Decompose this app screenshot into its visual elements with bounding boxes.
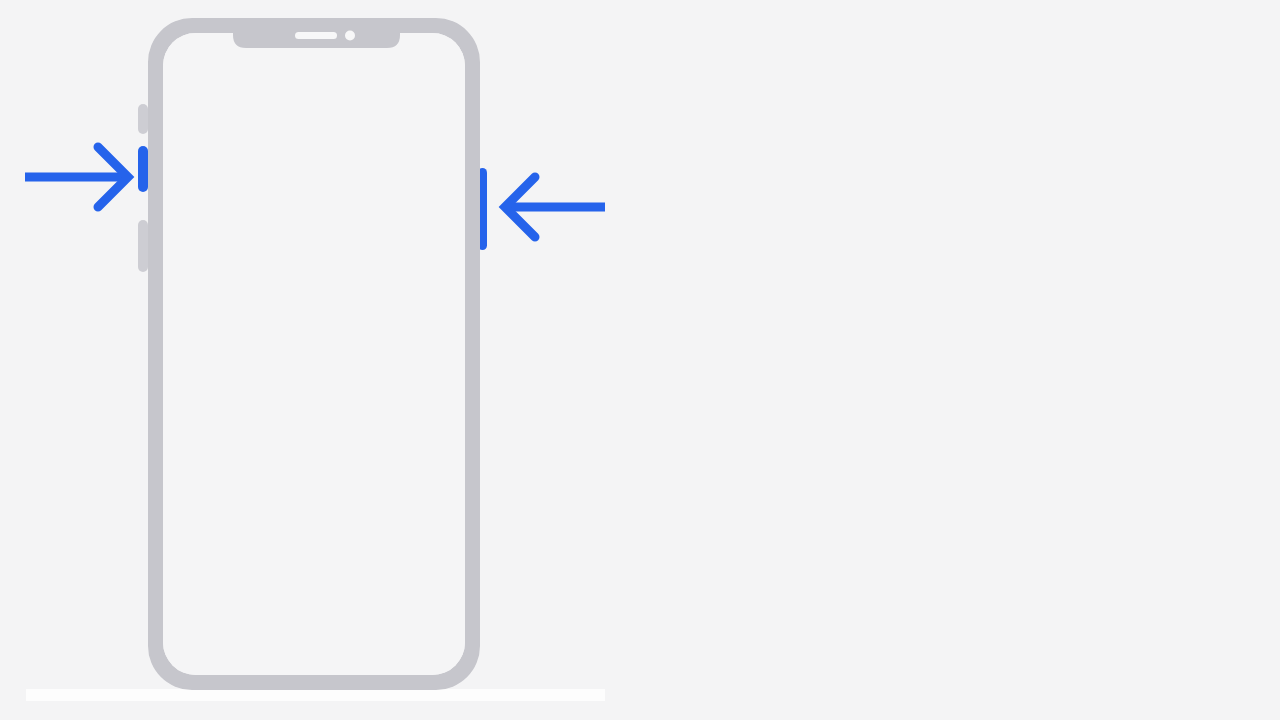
button[interactable]: Phone side buttons diagram	[0, 0, 1280, 720]
